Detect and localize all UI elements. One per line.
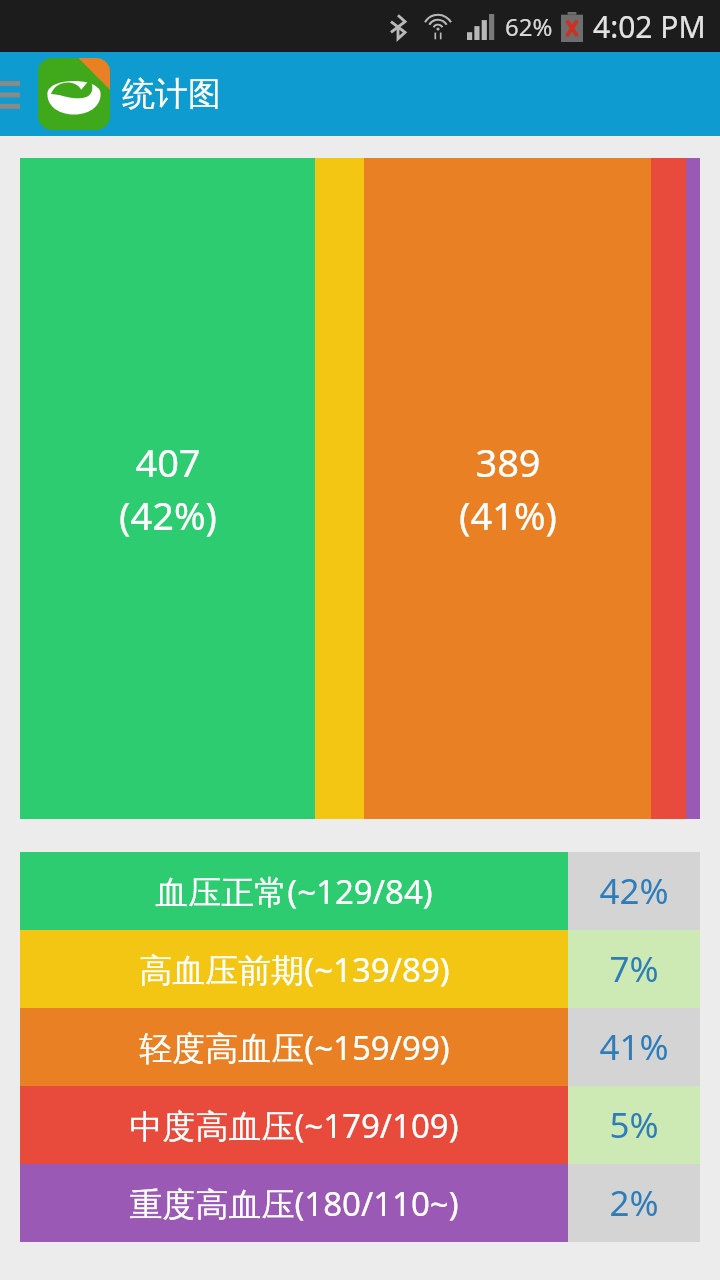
staticText: 重度高血压(180/110~) (129, 1181, 459, 1226)
button[interactable]: 高血压前期(~139/89) (20, 930, 700, 1008)
staticText: 轻度高血压(~159/99) (139, 1025, 450, 1070)
staticText: 统计图 (122, 73, 221, 115)
button[interactable]: Open navigation menu (0, 52, 30, 136)
staticText: 389 (41%) (459, 436, 557, 541)
staticText: 4:02 PM (593, 6, 706, 47)
button[interactable]: 389 (41%) (364, 158, 651, 819)
staticText: 中度高血压(~179/109) (129, 1103, 459, 1148)
staticText: 血压正常(~129/84) (155, 869, 433, 914)
staticText: 41% (599, 1023, 669, 1071)
button[interactable]: 407 (42%) (20, 158, 315, 819)
staticText: 2% (609, 1179, 659, 1227)
button[interactable]: 血压正常(~129/84) (20, 852, 700, 930)
staticText: 5% (609, 1101, 659, 1149)
button[interactable]: 重度高血压(180/110~) (20, 1164, 700, 1242)
staticText: 62% (505, 10, 553, 43)
staticText: 42% (599, 867, 669, 915)
staticText: 7% (609, 945, 659, 993)
staticText: 407 (42%) (119, 436, 217, 541)
staticText: 高血压前期(~139/89) (139, 947, 450, 992)
button[interactable]: 中度高血压(~179/109) (20, 1086, 700, 1164)
button[interactable]: 轻度高血压(~159/99) (20, 1008, 700, 1086)
